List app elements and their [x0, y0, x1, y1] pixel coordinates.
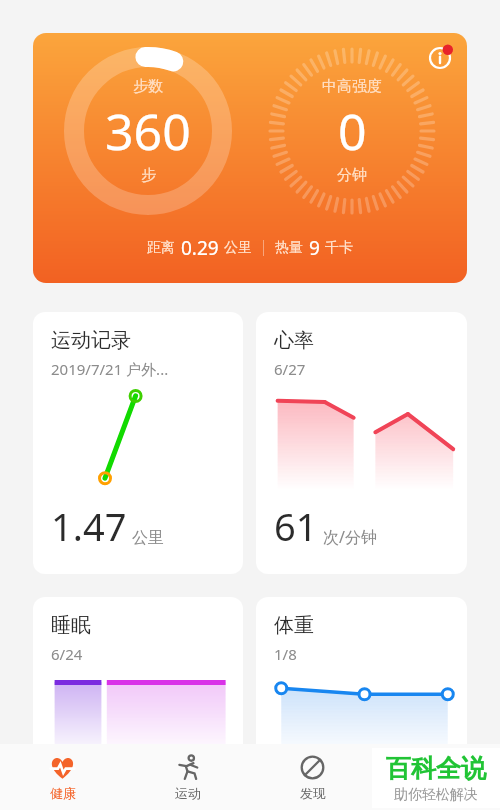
staticText: 61	[274, 500, 318, 552]
staticText: 百科全说	[386, 753, 486, 784]
button[interactable]: 睡眠	[33, 597, 243, 757]
staticText: 设备	[425, 785, 451, 801]
staticText: 公里	[132, 528, 164, 548]
button[interactable]: 信息	[427, 41, 457, 71]
staticText: 360	[105, 97, 191, 165]
staticText: 0	[338, 97, 367, 165]
button[interactable]: 健康	[0, 744, 125, 810]
staticText: 步	[141, 166, 156, 185]
staticText: 健康	[50, 785, 76, 801]
staticText: 中高强度	[322, 77, 382, 96]
staticText: 发现	[300, 785, 326, 801]
staticText: 睡眠	[51, 613, 91, 638]
staticText: 1/8	[274, 644, 297, 664]
staticText: 体重	[274, 613, 314, 638]
button[interactable]: 步数	[33, 33, 467, 283]
staticText: 公里	[224, 239, 252, 257]
button[interactable]: 运动记录	[33, 312, 243, 574]
staticText: 分钟	[337, 166, 367, 185]
button[interactable]: 心率	[256, 312, 467, 574]
staticText: 千卡	[325, 239, 353, 257]
staticText: 运动	[175, 785, 201, 801]
staticText: 步数	[133, 77, 163, 96]
button[interactable]: 运动	[125, 744, 250, 810]
staticText: 6/27	[274, 359, 306, 379]
staticText: 2019/7/21 户外...	[51, 359, 169, 379]
staticText: 助你轻松解决	[394, 786, 478, 804]
staticText: 6/24	[51, 644, 83, 664]
button[interactable]: 发现	[250, 744, 375, 810]
staticText: 1.47	[51, 500, 127, 552]
staticText: 9	[309, 235, 320, 261]
staticText: 运动记录	[51, 328, 131, 353]
staticText: 热量	[275, 239, 303, 257]
staticText: 心率	[274, 328, 314, 353]
button[interactable]: 体重	[256, 597, 467, 757]
button[interactable]: 设备	[375, 744, 500, 810]
staticText: 0.29	[181, 235, 219, 261]
staticText: 次/分钟	[323, 526, 377, 548]
staticText: 距离	[147, 239, 175, 257]
